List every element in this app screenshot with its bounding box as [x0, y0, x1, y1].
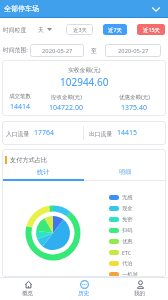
staticText: 实收金额(元) [68, 66, 101, 74]
staticText: 近7天 [108, 26, 122, 33]
button[interactable]: 出口流量 [84, 121, 166, 145]
button[interactable]: 入口流量 [2, 121, 83, 145]
button[interactable]: 2020-05-27 [105, 44, 161, 57]
button[interactable]: 概览 [0, 277, 56, 300]
button[interactable]: 近15天 [137, 24, 165, 35]
staticText: 代泊 [122, 260, 133, 267]
staticText: 一机游 [122, 271, 138, 278]
staticText: 免密 [122, 216, 133, 223]
staticText: 天 [38, 26, 44, 33]
staticText: 统计 [37, 168, 50, 176]
button[interactable]: 2020-05-27 [30, 44, 84, 57]
staticText: 1375.40 [121, 103, 147, 113]
button[interactable]: 免密 [109, 214, 133, 225]
button[interactable]: 一机游 [109, 269, 138, 280]
button[interactable]: 优惠金额(元) [112, 93, 156, 113]
staticText: 优惠金额(元) [119, 93, 150, 101]
staticText: 扫码 [122, 227, 133, 234]
button[interactable]: 近7天 [103, 24, 127, 35]
staticText: 优惠 [122, 238, 133, 245]
staticText: 时间范围: [3, 46, 28, 54]
staticText: 全部停车场 [4, 4, 39, 13]
button[interactable]: 现金 [109, 203, 133, 214]
button[interactable]: 应收金额(元) [44, 93, 88, 113]
button[interactable]: 成交笔数 [0, 93, 42, 112]
button[interactable]: 明细 [84, 164, 166, 181]
button[interactable]: 统计 [2, 164, 84, 181]
button[interactable]: 近3天 [66, 24, 93, 35]
button[interactable]: 扫码 [109, 225, 133, 236]
staticText: 现金 [122, 205, 133, 212]
staticText: 2020-05-27 [118, 47, 149, 55]
staticText: 近15天 [143, 26, 160, 33]
button[interactable]: 天 [38, 26, 52, 33]
staticText: 至 [91, 47, 97, 54]
staticText: 17764 [34, 128, 55, 138]
staticText: 历史 [78, 290, 90, 297]
staticText: 明细 [119, 168, 132, 176]
staticText: 我的 [134, 290, 146, 297]
button[interactable]: 我的 [112, 277, 168, 300]
button[interactable]: 全部停车场 [0, 0, 168, 18]
staticText: 2020-05-27 [42, 47, 73, 55]
staticText: 102944.60 [60, 75, 109, 89]
staticText: 出口流量 [89, 130, 113, 137]
staticText: 14414 [10, 102, 31, 112]
button[interactable]: 无感 [109, 192, 133, 203]
button[interactable]: 代泊 [109, 258, 133, 269]
staticText: 无感 [122, 194, 133, 201]
staticText: 近3天 [73, 26, 87, 33]
button[interactable]: ETC [109, 247, 131, 258]
button[interactable]: 历史 [56, 277, 112, 300]
button[interactable]: 优惠 [109, 236, 133, 247]
staticText: 概览 [22, 290, 34, 297]
staticText: 104722.00 [49, 103, 83, 113]
staticText: 入口流量 [6, 130, 30, 137]
staticText: 支付方式占比 [10, 156, 48, 164]
staticText: 成交笔数 [9, 93, 31, 100]
staticText: 时间粒度 [3, 26, 27, 33]
staticText: 应收金额(元) [51, 93, 82, 101]
staticText: ETC [122, 249, 131, 256]
staticText: 14415 [117, 128, 138, 138]
